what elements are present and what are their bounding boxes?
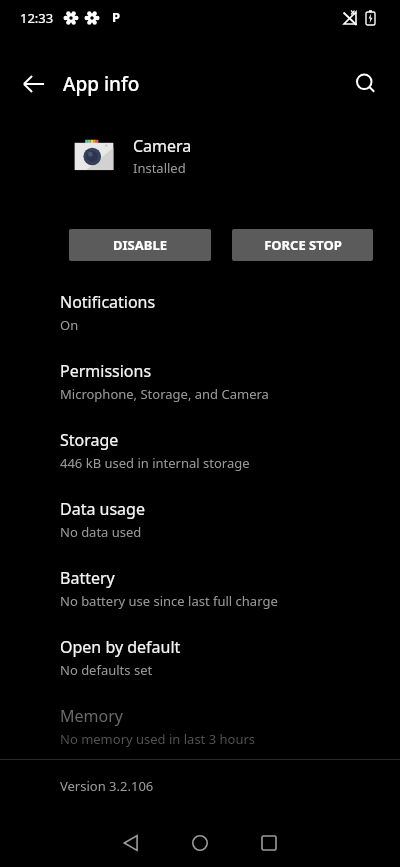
staticText: Microphone, Storage, and Camera [60,385,269,403]
staticText: FORCE STOP [264,236,342,254]
staticText: No memory used in last 3 hours [60,730,256,748]
button[interactable]: DISABLE [69,229,211,261]
staticText: Memory [60,705,123,727]
staticText: 446 kB used in internal storage [60,454,250,472]
staticText: Permissions [60,360,152,382]
staticText: Storage [60,429,119,451]
button[interactable]: Home [176,819,224,867]
button[interactable]: Open by default [0,628,400,697]
staticText: No data used [60,523,142,541]
staticText: Version 3.2.106 [60,777,154,795]
button[interactable]: Data usage [0,490,400,559]
button[interactable]: Camera [0,128,400,184]
button[interactable]: Storage [0,421,400,490]
staticText: No defaults set [60,661,153,679]
button[interactable]: Notifications [0,283,400,352]
staticText: 12:33 [20,9,54,27]
staticText: On [60,316,79,334]
button[interactable]: Back [6,56,62,112]
staticText: No battery use since last full charge [60,592,278,610]
staticText: Notifications [60,291,156,313]
button[interactable]: Permissions [0,352,400,421]
button[interactable]: Battery [0,559,400,628]
staticText: Data usage [60,498,145,520]
staticText: P [112,8,121,26]
staticText: App info [63,71,140,97]
button[interactable]: Back [107,819,155,867]
button[interactable]: Recent apps [245,819,293,867]
button[interactable]: Memory [0,697,400,766]
staticText: Open by default [60,636,181,658]
button[interactable]: FORCE STOP [232,229,373,261]
staticText: DISABLE [113,236,167,254]
button[interactable]: Search [340,58,392,110]
staticText: Installed [133,159,186,177]
staticText: Camera [133,135,192,157]
staticText: Battery [60,567,115,589]
